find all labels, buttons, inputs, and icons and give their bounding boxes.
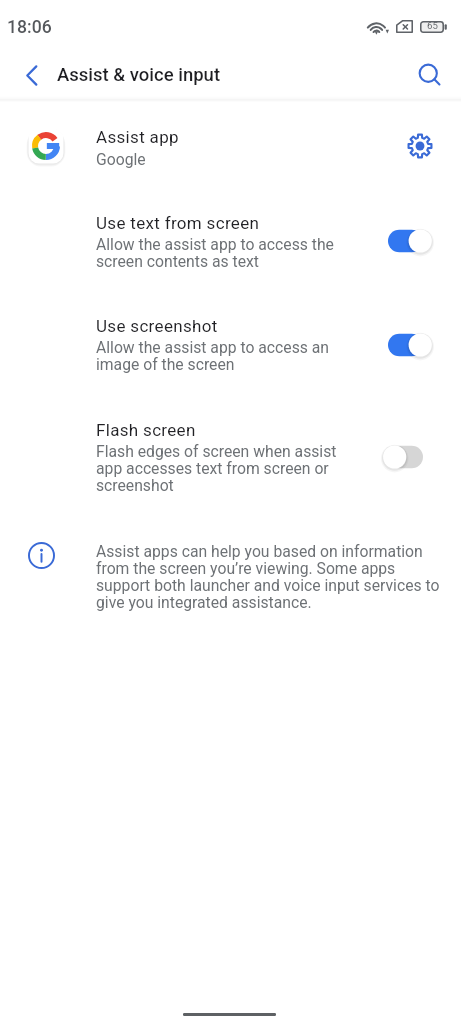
- button[interactable]: Flash screen: [0, 406, 461, 496]
- button[interactable]: Assist app: [0, 100, 461, 187]
- button[interactable]: Use text from screen: [0, 199, 461, 274]
- button[interactable]: On: [383, 324, 435, 366]
- staticText: Assist app: [96, 127, 179, 147]
- staticText: Use screenshot: [96, 316, 218, 336]
- staticText: Google: [96, 151, 146, 168]
- staticText: Flash edges of screen when assist app ac…: [96, 443, 354, 494]
- staticText: 65: [427, 20, 438, 31]
- button[interactable]: On: [383, 220, 435, 262]
- staticText: Allow the assist app to access an image …: [96, 339, 354, 373]
- button[interactable]: Use screenshot: [0, 302, 461, 377]
- staticText: Allow the assist app to access the scree…: [96, 236, 354, 270]
- button[interactable]: Search: [406, 51, 454, 99]
- button[interactable]: Off: [383, 436, 435, 478]
- staticText: Assist apps can help you based on inform…: [96, 543, 444, 611]
- button[interactable]: Back: [7, 51, 55, 99]
- staticText: Flash screen: [96, 420, 196, 440]
- staticText: 18:06: [7, 17, 52, 38]
- staticText: Assist & voice input: [57, 64, 221, 86]
- staticText: Use text from screen: [96, 213, 260, 233]
- button[interactable]: Assist app settings: [396, 122, 444, 170]
